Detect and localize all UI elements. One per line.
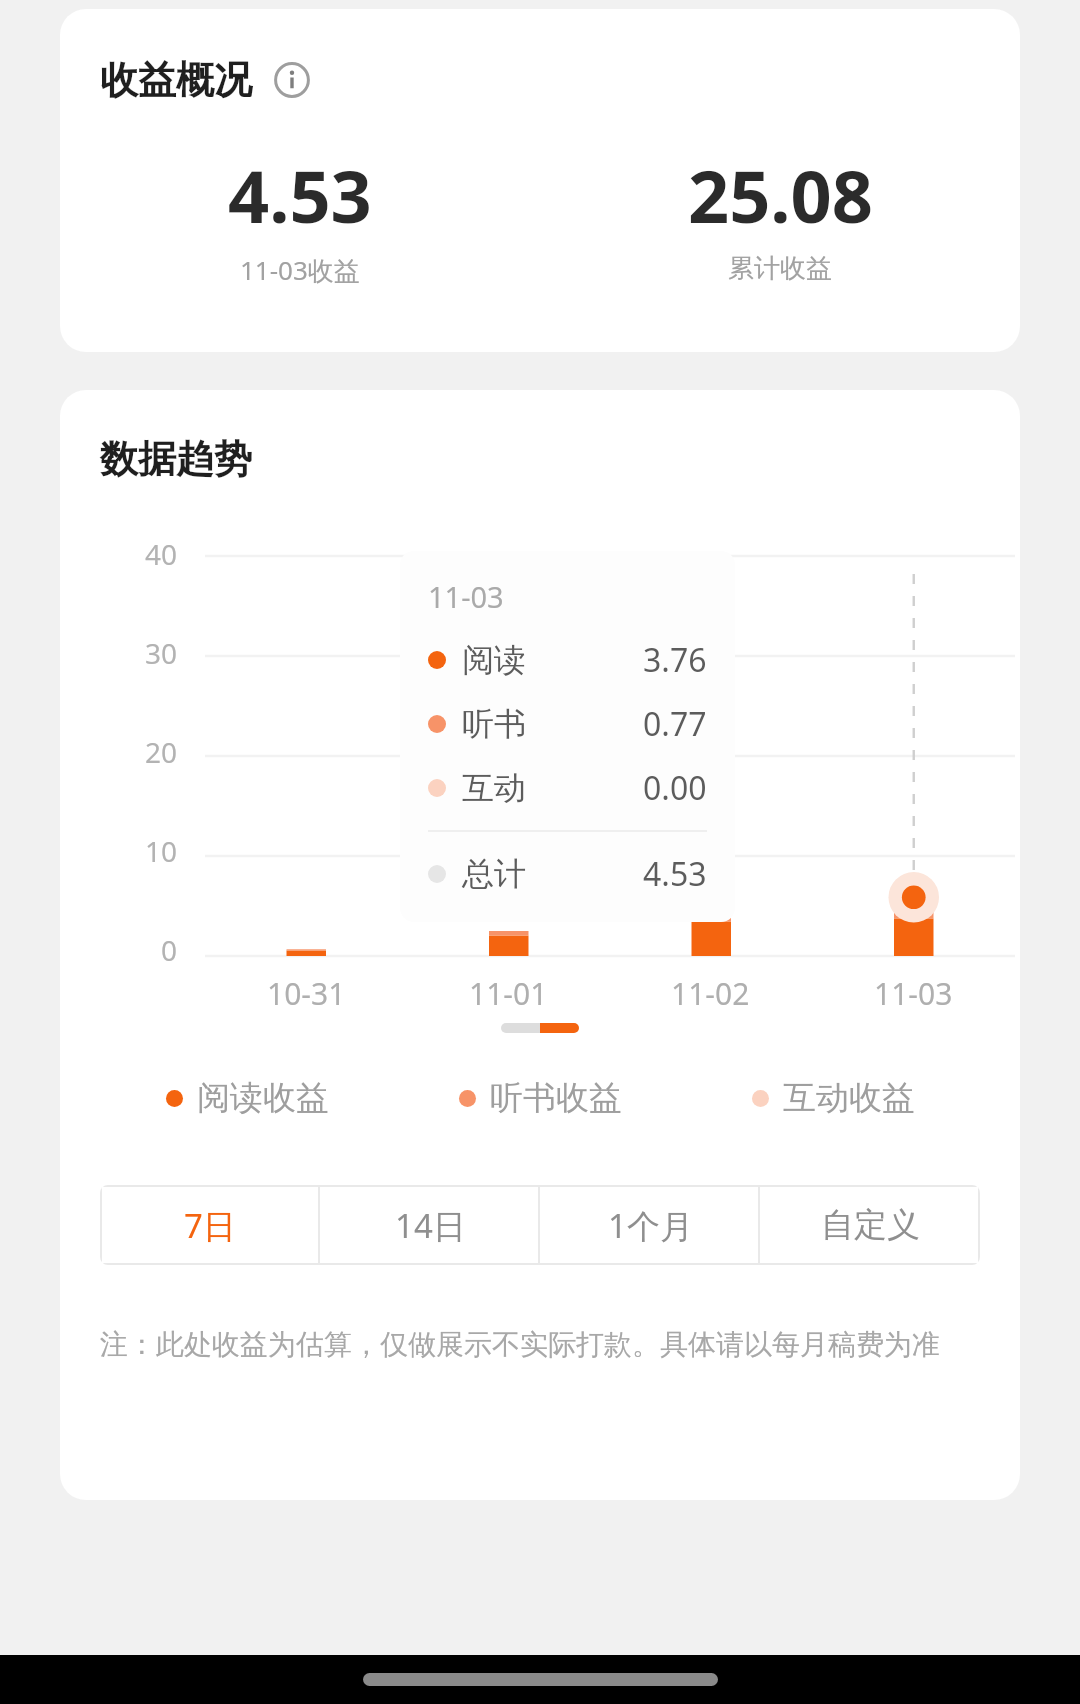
staticText: 收益概况 bbox=[100, 56, 252, 104]
button[interactable]: 7日 bbox=[100, 1185, 320, 1265]
button[interactable]: 收益概况 bbox=[100, 56, 310, 104]
staticText: 30 bbox=[145, 634, 178, 668]
staticText: 25.08 bbox=[688, 146, 873, 244]
staticText: 11-01 bbox=[469, 973, 548, 1014]
staticText: 10-31 bbox=[267, 973, 346, 1014]
staticText: 注：此处收益为估算，仅做展示不实际打款。具体请以每月稿费为准 bbox=[100, 1327, 940, 1362]
staticText: 3.76 bbox=[643, 638, 707, 682]
staticText: 互动收益 bbox=[783, 1077, 915, 1119]
staticText: 11-03收益 bbox=[240, 252, 360, 288]
staticText: 11-03 bbox=[428, 577, 504, 616]
staticText: 数据趋势 bbox=[100, 435, 252, 483]
staticText: 40 bbox=[145, 535, 178, 569]
staticText: 总计 bbox=[462, 854, 526, 894]
staticText: 14日 bbox=[395, 1203, 466, 1248]
staticText: 0 bbox=[161, 931, 178, 965]
staticText: 7日 bbox=[184, 1203, 236, 1248]
staticText: 0.00 bbox=[643, 766, 707, 810]
button[interactable]: 互动收益 bbox=[687, 1077, 980, 1119]
staticText: 1个月 bbox=[608, 1203, 693, 1248]
button[interactable]: 阅读收益 bbox=[100, 1077, 394, 1119]
button[interactable]: 听书收益 bbox=[394, 1077, 687, 1119]
staticText: 阅读收益 bbox=[197, 1077, 329, 1119]
staticText: 阅读 bbox=[462, 640, 526, 680]
staticText: 4.53 bbox=[643, 852, 707, 896]
staticText: 互动 bbox=[462, 768, 526, 808]
button[interactable]: 自定义 bbox=[760, 1185, 980, 1265]
staticText: 0.77 bbox=[643, 702, 707, 746]
staticText: 11-03 bbox=[874, 973, 953, 1014]
staticText: 4.53 bbox=[228, 146, 372, 244]
button[interactable]: 1个月 bbox=[540, 1185, 760, 1265]
staticText: 累计收益 bbox=[728, 252, 832, 285]
button[interactable]: 14日 bbox=[320, 1185, 540, 1265]
staticText: 听书收益 bbox=[490, 1077, 622, 1119]
staticText: 11-02 bbox=[671, 973, 750, 1014]
button[interactable]: 收益说明 bbox=[274, 62, 310, 98]
staticText: 听书 bbox=[462, 704, 526, 744]
staticText: 20 bbox=[145, 733, 178, 767]
staticText: 自定义 bbox=[821, 1204, 920, 1246]
staticText: 10 bbox=[145, 832, 178, 866]
